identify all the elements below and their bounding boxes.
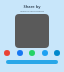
button[interactable]: Share target bbox=[29, 50, 35, 56]
staticText: send to your friends bbox=[0, 9, 64, 12]
button[interactable]: Share target bbox=[54, 50, 60, 56]
staticText: Share by bbox=[0, 4, 64, 9]
button[interactable]: Share target bbox=[17, 50, 23, 56]
button[interactable] bbox=[6, 60, 58, 64]
button[interactable]: Share target bbox=[4, 50, 10, 56]
button[interactable]: Share target bbox=[42, 50, 48, 56]
